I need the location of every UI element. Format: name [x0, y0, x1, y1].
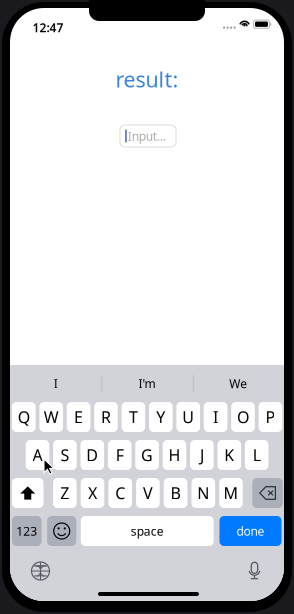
staticText: S [60, 444, 69, 466]
staticText: I'm [138, 375, 155, 391]
staticText: V [143, 482, 153, 504]
button[interactable]: Delete [252, 478, 283, 508]
staticText: 123 [16, 523, 37, 539]
button[interactable]: A [26, 440, 49, 470]
button[interactable]: H [163, 440, 186, 470]
staticText: R [101, 406, 111, 428]
button[interactable]: I'm [101, 365, 193, 402]
staticText: result: [115, 65, 178, 93]
staticText: A [32, 444, 42, 466]
button[interactable]: Shift [12, 478, 43, 508]
button[interactable]: T [122, 402, 145, 432]
staticText: I [213, 406, 218, 428]
staticText: T [129, 406, 138, 428]
button[interactable]: Y [149, 402, 173, 432]
button[interactable]: R [94, 402, 118, 432]
staticText: L [253, 444, 261, 466]
button[interactable]: N [191, 478, 215, 508]
staticText: Y [156, 406, 165, 428]
staticText: I [54, 375, 58, 391]
staticText: E [74, 406, 83, 428]
button[interactable]: G [135, 440, 159, 470]
button[interactable]: Z [53, 478, 77, 508]
button[interactable]: I [10, 365, 101, 402]
button[interactable]: Dictate [237, 554, 271, 588]
button[interactable]: 123 [12, 516, 42, 546]
button[interactable]: U [176, 402, 200, 432]
staticText: We [229, 375, 247, 391]
button[interactable]: C [108, 478, 132, 508]
button[interactable]: E [67, 402, 90, 432]
button[interactable]: D [80, 440, 104, 470]
staticText: D [86, 444, 98, 466]
button[interactable]: We [193, 365, 284, 402]
staticText: U [182, 406, 194, 428]
button[interactable]: space [81, 516, 214, 546]
staticText: F [116, 444, 124, 466]
button[interactable]: M [219, 478, 243, 508]
button[interactable]: Input... [120, 125, 176, 147]
button[interactable]: O [231, 402, 255, 432]
staticText: N [197, 482, 209, 504]
button[interactable]: Q [12, 402, 36, 432]
staticText: H [168, 444, 180, 466]
button[interactable]: X [81, 478, 104, 508]
staticText: J [200, 444, 204, 466]
button[interactable]: I [204, 402, 227, 432]
button[interactable]: V [136, 478, 160, 508]
staticText: C [115, 482, 125, 504]
staticText: K [224, 444, 234, 466]
staticText: space [131, 523, 164, 539]
staticText: Z [60, 482, 69, 504]
staticText: W [44, 406, 59, 428]
staticText: 12:47 [32, 19, 63, 36]
staticText: G [141, 444, 153, 466]
button[interactable]: B [164, 478, 187, 508]
staticText: done [236, 523, 264, 539]
button[interactable]: S [53, 440, 77, 470]
button[interactable]: done [219, 516, 281, 546]
staticText: P [265, 406, 275, 428]
staticText: Input... [128, 128, 166, 144]
button[interactable]: L [245, 440, 268, 470]
button[interactable]: F [108, 440, 131, 470]
button[interactable]: P [259, 402, 282, 432]
button[interactable]: Emoji [47, 516, 76, 546]
button[interactable]: K [217, 440, 241, 470]
button[interactable]: W [39, 402, 63, 432]
staticText: O [237, 406, 249, 428]
button[interactable]: Switch keyboard [23, 554, 57, 588]
staticText: Q [18, 406, 30, 428]
staticText: X [88, 482, 97, 504]
staticText: M [223, 482, 238, 504]
staticText: B [171, 482, 181, 504]
button[interactable]: J [190, 440, 214, 470]
